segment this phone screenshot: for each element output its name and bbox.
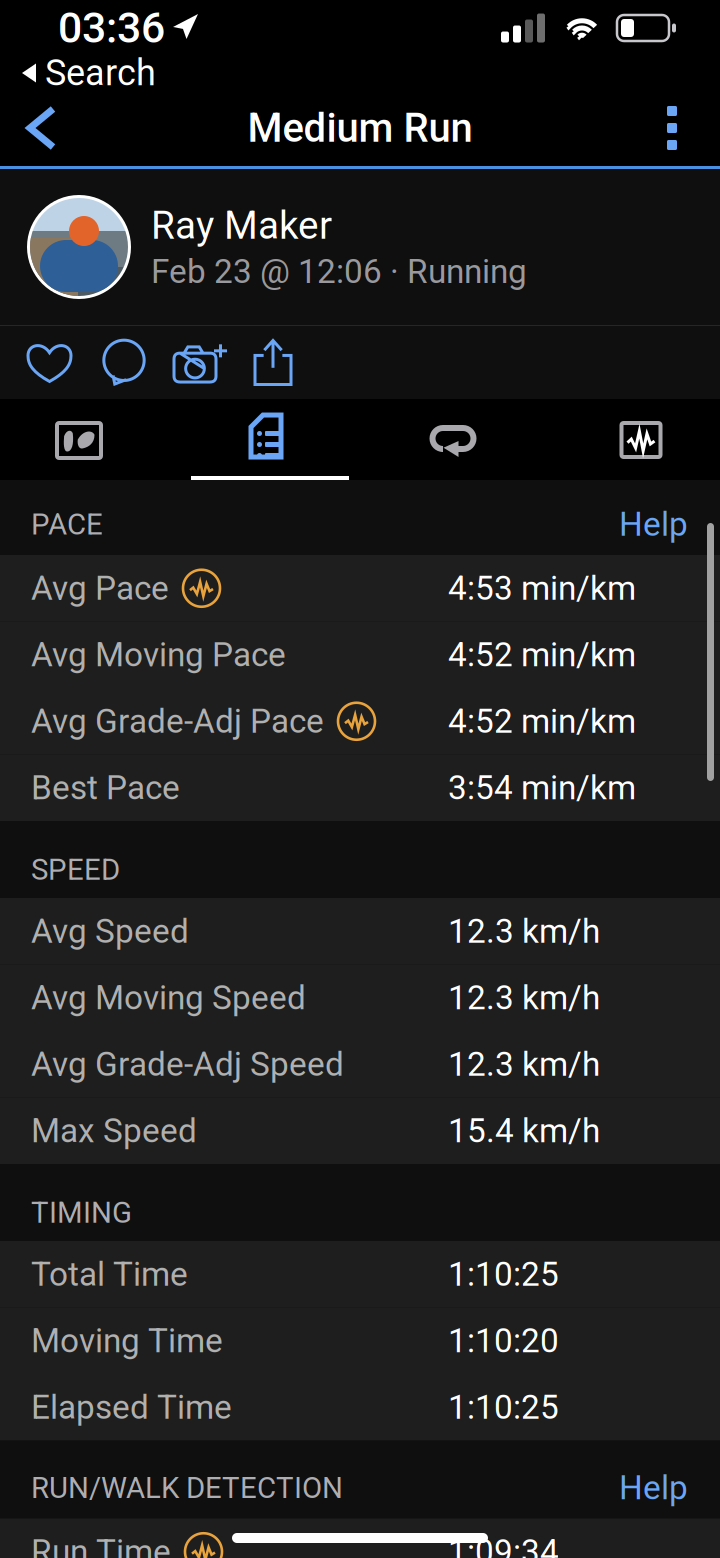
staticText: 4:52 min/km (448, 635, 636, 674)
staticText: 4:53 min/km (448, 569, 636, 608)
staticText: Medium Run (247, 105, 472, 151)
staticText: Feb 23 @ 12:06 · Running (151, 252, 527, 291)
staticText: 1:09:34 (448, 1532, 559, 1558)
staticText: Total Time (31, 1255, 188, 1294)
button[interactable]: Like (12, 326, 87, 398)
staticText: Avg Grade-Adj Pace (31, 702, 324, 741)
button[interactable]: More options (637, 87, 720, 169)
staticText: 1:10:25 (448, 1388, 559, 1427)
staticText: PACE (31, 507, 103, 542)
button[interactable]: Avg Grade-Adj Pace (0, 688, 720, 754)
staticText: Search (45, 52, 156, 94)
button[interactable]: Help (619, 1468, 688, 1507)
button[interactable]: Map (0, 399, 180, 480)
button[interactable]: Avg Speed (0, 898, 720, 964)
button[interactable]: Add photo (161, 326, 237, 399)
button[interactable]: Avg Moving Pace (0, 621, 720, 688)
staticText: TIMING (31, 1196, 132, 1230)
staticText: Elapsed Time (31, 1388, 232, 1427)
staticText: Help (619, 505, 688, 544)
button[interactable]: Back (0, 90, 81, 166)
staticText: Ray Maker (151, 203, 332, 248)
staticText: 3:54 min/km (448, 768, 636, 807)
button[interactable]: Avg Pace (0, 555, 720, 621)
staticText: Best Pace (31, 768, 180, 807)
staticText: SPEED (31, 853, 120, 887)
staticText: Avg Pace (31, 569, 169, 608)
staticText: 15.4 km/h (448, 1111, 600, 1150)
button[interactable]: Total Time (0, 1241, 720, 1307)
staticText: 1:10:25 (448, 1255, 559, 1294)
staticText: 12.3 km/h (448, 1045, 600, 1084)
button[interactable]: Ray Maker (0, 169, 720, 325)
button[interactable]: Moving Time (0, 1307, 720, 1374)
button[interactable]: Avg Moving Speed (0, 964, 720, 1031)
button[interactable]: Details (180, 399, 360, 480)
button[interactable]: Avg Grade-Adj Speed (0, 1031, 720, 1097)
staticText: Avg Moving Speed (31, 978, 306, 1017)
button[interactable]: Comment (87, 326, 161, 399)
staticText: Avg Speed (31, 912, 189, 951)
staticText: 03:36 (58, 3, 165, 53)
staticText: Run Time (31, 1532, 171, 1558)
button[interactable]: Laps (360, 399, 540, 480)
staticText: RUN/WALK DETECTION (31, 1471, 343, 1505)
button[interactable]: Analysis (540, 399, 720, 480)
staticText: 1:10:20 (448, 1321, 559, 1360)
button[interactable]: Max Speed (0, 1097, 720, 1164)
staticText: Avg Grade-Adj Speed (31, 1045, 344, 1084)
button[interactable]: Help (619, 505, 688, 544)
staticText: Avg Moving Pace (31, 635, 286, 674)
button[interactable]: Elapsed Time (0, 1374, 720, 1440)
button[interactable]: Share (237, 326, 309, 398)
staticText: 12.3 km/h (448, 978, 600, 1017)
button[interactable]: Best Pace (0, 754, 720, 821)
staticText: 12.3 km/h (448, 912, 600, 951)
button[interactable]: Run Time (0, 1518, 720, 1558)
staticText: Help (619, 1468, 688, 1507)
staticText: 4:52 min/km (448, 702, 636, 741)
staticText: Max Speed (31, 1111, 197, 1150)
staticText: Moving Time (31, 1321, 223, 1360)
